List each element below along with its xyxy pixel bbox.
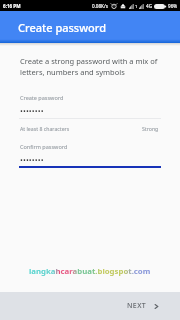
other: Silent mode (120, 3, 126, 9)
staticText: Create a strong password with a mix of l… (20, 56, 158, 77)
button[interactable]: Confirm password (19, 139, 161, 168)
staticText: •••••••• (20, 106, 44, 116)
staticText: •••••••• (20, 155, 44, 165)
other: Alarm set (111, 3, 117, 9)
staticText: 0.08K/s (92, 3, 108, 9)
staticText: 1 (135, 4, 138, 9)
staticText: langkahcarabuat.blogspot.com (29, 266, 151, 277)
button[interactable]: NEXT (127, 301, 160, 311)
other: Battery 96 percent (154, 4, 166, 9)
staticText: 96% (168, 3, 178, 9)
staticText: 4G (146, 3, 152, 9)
button[interactable]: Create password (19, 90, 161, 119)
button[interactable]: Create password (0, 11, 180, 43)
staticText: At least 8 characters (20, 125, 70, 132)
staticText: Strong (142, 125, 159, 132)
staticText: Create password (20, 94, 64, 101)
staticText: Confirm password (20, 143, 68, 150)
staticText: Create password (18, 20, 107, 35)
staticText: NEXT (127, 301, 147, 311)
staticText: 6:16 PM (3, 3, 21, 9)
